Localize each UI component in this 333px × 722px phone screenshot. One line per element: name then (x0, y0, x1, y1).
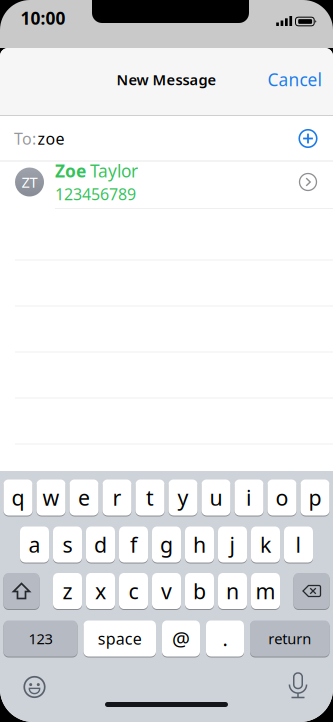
button[interactable]: q (3, 479, 32, 516)
button[interactable]: f (119, 526, 148, 563)
button[interactable]: Delete (293, 572, 329, 609)
staticText: h (193, 530, 206, 559)
staticText: y (177, 483, 188, 512)
button[interactable]: @ (162, 620, 200, 657)
staticText: f (130, 530, 137, 559)
button[interactable]: h (185, 526, 214, 563)
button[interactable]: l (284, 526, 313, 563)
staticText: t (146, 483, 154, 512)
staticText: z (62, 577, 72, 605)
button[interactable]: r (102, 479, 131, 516)
staticText: a (28, 530, 40, 559)
staticText: d (94, 530, 107, 559)
staticText: zoe (37, 128, 64, 149)
staticText: e (78, 483, 90, 512)
staticText: Zoe (55, 159, 86, 182)
staticText: space (98, 628, 142, 649)
staticText: l (295, 530, 301, 559)
staticText: New Message (116, 70, 216, 89)
staticText: g (160, 530, 173, 559)
staticText: m (255, 577, 275, 605)
button[interactable]: z (53, 572, 82, 609)
button[interactable]: return (250, 620, 329, 657)
button[interactable]: y (168, 479, 197, 516)
staticText: b (193, 577, 206, 605)
staticText: u (209, 483, 222, 512)
button[interactable]: Dictate (285, 673, 311, 699)
staticText: c (128, 577, 138, 605)
staticText: ZT (21, 172, 37, 192)
button[interactable]: s (53, 526, 82, 563)
staticText: o (275, 483, 288, 512)
staticText: s (62, 530, 72, 559)
button[interactable]: i (234, 479, 263, 516)
button[interactable]: ZT (0, 159, 333, 205)
button[interactable]: Add Contact (295, 125, 321, 151)
button[interactable]: x (86, 572, 115, 609)
button[interactable]: . (206, 620, 244, 657)
button[interactable]: Cancel (267, 68, 321, 91)
button[interactable]: v (152, 572, 181, 609)
button[interactable]: g (152, 526, 181, 563)
button[interactable]: t (135, 479, 164, 516)
button[interactable]: j (218, 526, 247, 563)
button[interactable]: k (251, 526, 280, 563)
button[interactable]: Shift (3, 572, 39, 609)
staticText: v (161, 577, 172, 605)
staticText: @ (172, 625, 190, 652)
staticText: To: (14, 128, 36, 149)
staticText: n (226, 577, 239, 605)
staticText: Taylor (90, 159, 138, 182)
button[interactable]: c (119, 572, 148, 609)
staticText: 10:00 (20, 6, 65, 29)
staticText: i (246, 483, 252, 512)
button[interactable]: b (185, 572, 214, 609)
button[interactable]: space (83, 620, 156, 657)
staticText: k (260, 530, 271, 559)
staticText: p (308, 483, 321, 512)
button[interactable]: w (36, 479, 65, 516)
staticText: return (268, 629, 311, 648)
staticText: 123 (28, 629, 52, 648)
button[interactable]: a (20, 526, 49, 563)
staticText: . (222, 625, 227, 652)
button[interactable]: u (201, 479, 230, 516)
staticText: Cancel (267, 68, 321, 91)
button[interactable]: o (267, 479, 296, 516)
staticText: j (229, 530, 235, 559)
button[interactable]: m (251, 572, 280, 609)
staticText: r (112, 483, 121, 512)
button[interactable]: Emoji (19, 672, 49, 702)
button[interactable]: 123 (3, 620, 77, 657)
button[interactable]: p (300, 479, 329, 516)
staticText: x (95, 577, 106, 605)
button[interactable]: n (218, 572, 247, 609)
button[interactable]: d (86, 526, 115, 563)
button[interactable]: e (69, 479, 98, 516)
staticText: w (42, 483, 59, 512)
staticText: 123456789 (55, 183, 136, 205)
staticText: q (11, 483, 24, 512)
